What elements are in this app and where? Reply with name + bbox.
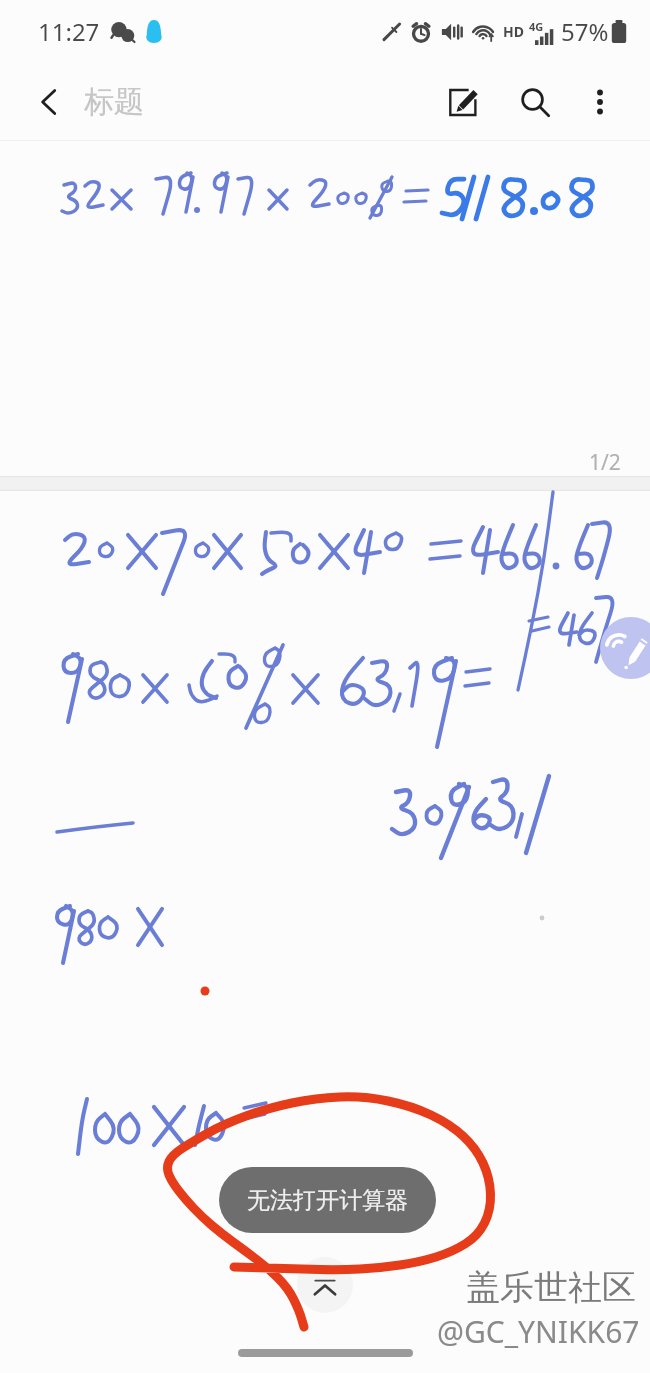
button[interactable]: Search [499,66,571,138]
button[interactable]: Show toolbar [297,1257,353,1313]
staticText: 标题 [84,83,144,121]
button[interactable]: Pen tool [600,617,650,679]
button[interactable]: More options [571,73,629,131]
staticText: 无法打开计算器 [247,1186,408,1215]
staticText: 1/2 [589,448,621,477]
staticText: 11:27 [38,15,100,48]
staticText: 4G [529,19,544,34]
staticText: 盖乐世社区 [466,1266,636,1309]
staticText: @GC_YNIKK67 [437,1311,640,1352]
button[interactable]: Edit note [427,66,499,138]
staticText: 57% [561,15,609,48]
staticText: HD [503,22,524,41]
button[interactable]: Back [14,67,84,137]
